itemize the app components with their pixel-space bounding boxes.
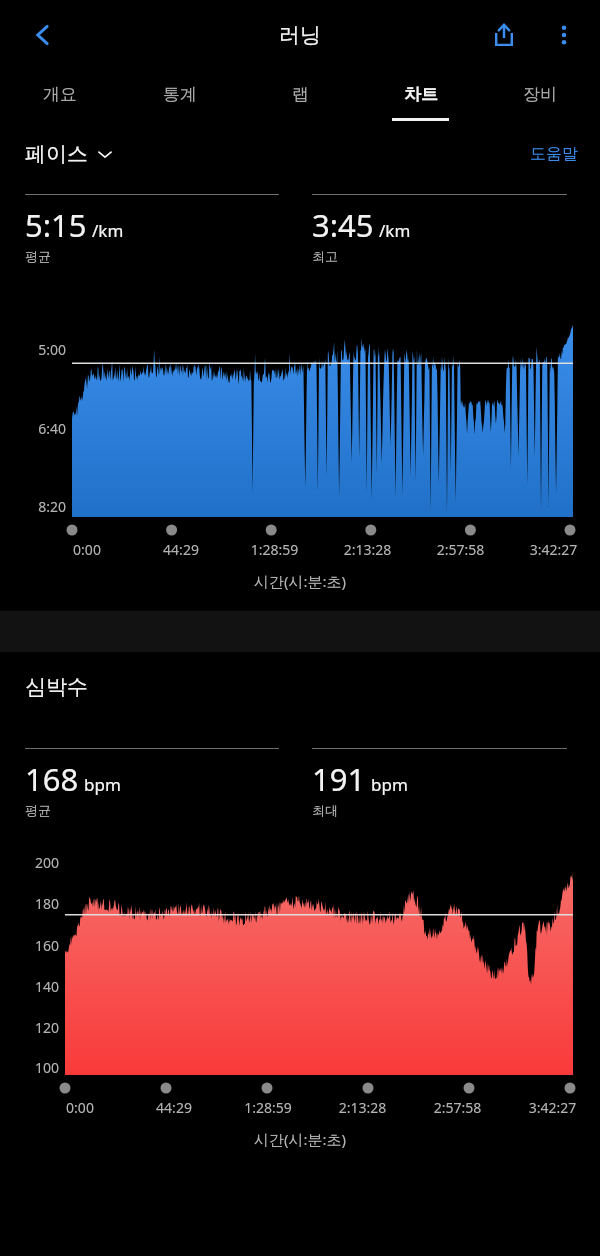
staticText: 160 — [0, 936, 59, 955]
staticText: 2:57:58 — [410, 1098, 505, 1117]
staticText: 5:00 — [0, 340, 66, 359]
staticText: 차트 — [404, 84, 438, 105]
staticText: 168 — [25, 758, 79, 800]
staticText: 44:29 — [127, 1098, 221, 1117]
button[interactable]: 개요 — [0, 70, 120, 132]
button[interactable]: Back — [15, 7, 71, 63]
staticText: 심박수 — [25, 674, 88, 700]
button[interactable]: 랩 — [240, 70, 360, 132]
staticText: 도움말 — [530, 144, 578, 164]
button[interactable]: Share — [476, 7, 532, 63]
staticText: 평균 — [25, 248, 51, 264]
button[interactable]: 장비 — [480, 70, 600, 132]
staticText: 0:00 — [40, 540, 134, 559]
staticText: 3:45 — [312, 204, 374, 246]
staticText: 100 — [0, 1058, 59, 1077]
staticText: 2:13:28 — [321, 540, 414, 559]
staticText: /km — [92, 219, 124, 242]
staticText: 최고 — [312, 248, 338, 264]
staticText: 2:57:58 — [414, 540, 507, 559]
staticText: 3:42:27 — [507, 540, 600, 559]
staticText: /km — [379, 219, 411, 242]
staticText: 120 — [0, 1018, 59, 1037]
staticText: 시간(시:분:초) — [0, 1129, 600, 1149]
button[interactable]: 차트 — [360, 70, 480, 132]
staticText: 통계 — [163, 84, 197, 105]
staticText: 1:28:59 — [221, 1098, 315, 1117]
staticText: 6:40 — [0, 419, 66, 438]
staticText: 200 — [0, 853, 59, 872]
staticText: 최대 — [312, 802, 338, 818]
staticText: 8:20 — [0, 497, 66, 516]
staticText: bpm — [371, 773, 408, 796]
staticText: 44:29 — [134, 540, 228, 559]
staticText: 평균 — [25, 802, 51, 818]
staticText: 랩 — [292, 84, 309, 105]
staticText: 러닝 — [279, 22, 321, 48]
staticText: 2:13:28 — [315, 1098, 410, 1117]
staticText: 3:42:27 — [505, 1098, 600, 1117]
staticText: 개요 — [43, 84, 77, 105]
button[interactable]: More options — [536, 7, 592, 63]
staticText: 140 — [0, 977, 59, 996]
button[interactable]: 도움말 — [530, 144, 578, 164]
button[interactable]: 페이스 — [25, 141, 113, 167]
staticText: 180 — [0, 894, 59, 913]
staticText: 5:15 — [25, 204, 87, 246]
staticText: 0:00 — [33, 1098, 127, 1117]
staticText: 191 — [312, 758, 366, 800]
staticText: 시간(시:분:초) — [0, 571, 600, 591]
staticText: 장비 — [523, 84, 557, 105]
staticText: 1:28:59 — [228, 540, 321, 559]
button[interactable]: 통계 — [120, 70, 240, 132]
staticText: bpm — [84, 773, 121, 796]
staticText: 페이스 — [25, 141, 88, 167]
